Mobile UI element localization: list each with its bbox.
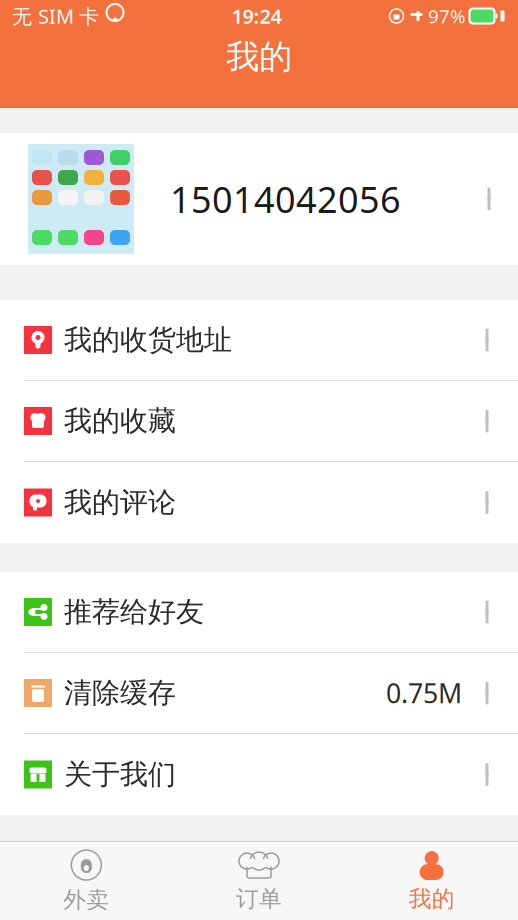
staticText: 订单 — [236, 885, 282, 913]
staticText: 我的收货地址 — [64, 323, 232, 357]
button[interactable]: 订单 — [173, 842, 345, 920]
staticText: 15014042056 — [170, 175, 401, 223]
staticText: 我的 — [409, 885, 455, 913]
button[interactable]: 外卖 — [0, 842, 173, 920]
button[interactable]: 我的收藏 — [0, 381, 518, 462]
button[interactable]: 清除缓存 — [0, 653, 518, 734]
staticText: 外卖 — [63, 886, 109, 914]
button[interactable]: 我的收货地址 — [0, 300, 518, 381]
button[interactable]: 关于我们 — [0, 734, 518, 815]
staticText: 19:24 — [231, 3, 281, 29]
staticText: 清除缓存 — [64, 676, 176, 710]
staticText: 我的评论 — [64, 485, 176, 520]
button[interactable]: 我的 — [345, 842, 518, 920]
button[interactable]: 15014042056 — [0, 133, 518, 265]
button[interactable]: 我的评论 — [0, 462, 518, 543]
staticText: 0.75M — [386, 675, 462, 711]
staticText: 关于我们 — [64, 757, 176, 792]
button[interactable]: 推荐给好友 — [0, 572, 518, 653]
staticText: 我的 — [226, 36, 292, 77]
staticText: 无 SIM 卡 — [12, 3, 99, 29]
staticText: 推荐给好友 — [64, 595, 204, 629]
staticText: 97% — [428, 4, 466, 28]
staticText: 我的收藏 — [64, 404, 176, 438]
